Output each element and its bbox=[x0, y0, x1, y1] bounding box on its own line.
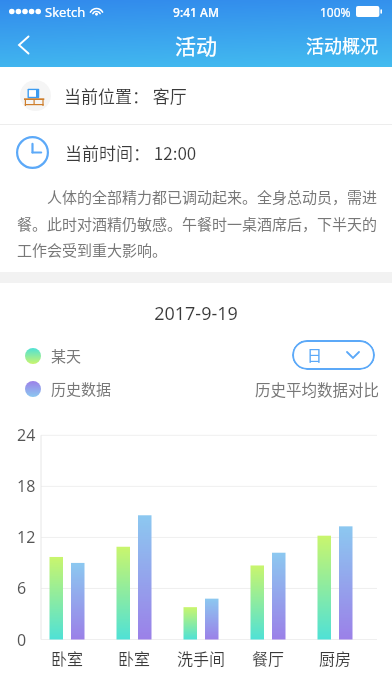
button[interactable]: 日 bbox=[292, 340, 375, 370]
staticText: 洗手间 bbox=[166, 646, 236, 669]
staticText: 18 bbox=[17, 475, 36, 497]
staticText: 餐厅 bbox=[233, 646, 303, 669]
staticText: 9:41 AM bbox=[0, 4, 392, 20]
staticText: 历史平均数据对比 bbox=[0, 378, 379, 400]
button[interactable]: Back bbox=[0, 22, 46, 67]
button[interactable]: 当前位置： 客厅 bbox=[0, 67, 392, 124]
staticText: 24 bbox=[17, 424, 36, 446]
staticText: 卧室 bbox=[99, 646, 169, 669]
staticText: 人体的全部精力都已调动起来。全身总动员，需进餐。此时对酒精仍敏感。午餐时一桌酒席… bbox=[17, 186, 385, 260]
staticText: 厨房 bbox=[300, 646, 370, 669]
staticText: 活动 bbox=[0, 30, 392, 60]
staticText: 当前时间： 12:00 bbox=[65, 140, 197, 165]
staticText: 2017-9-19 bbox=[0, 301, 392, 326]
staticText: Sketch bbox=[45, 3, 86, 21]
staticText: 活动概况 bbox=[306, 32, 378, 57]
staticText: 100% bbox=[320, 4, 351, 20]
staticText: 日 bbox=[307, 344, 323, 366]
staticText: 当前位置： 客厅 bbox=[64, 83, 187, 108]
staticText: 历史数据 bbox=[51, 378, 112, 400]
staticText: 0 bbox=[17, 629, 27, 651]
button[interactable]: 活动概况 bbox=[292, 22, 392, 67]
staticText: 12 bbox=[17, 526, 36, 548]
staticText: 卧室 bbox=[32, 646, 102, 669]
button[interactable]: 当前时间： 12:00 bbox=[0, 125, 392, 180]
staticText: 某天 bbox=[51, 345, 82, 367]
staticText: 6 bbox=[17, 577, 27, 599]
